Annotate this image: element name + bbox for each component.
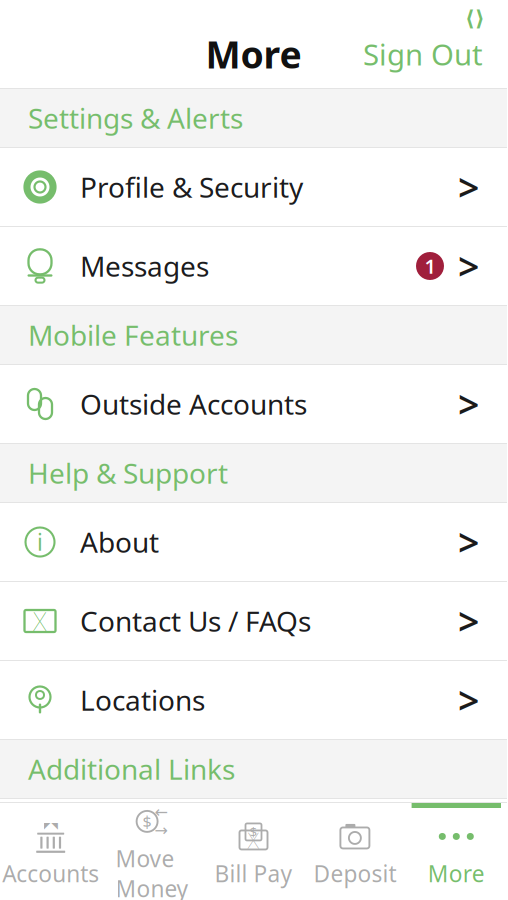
staticText: Accounts [2, 858, 99, 888]
button[interactable]: Messages [0, 227, 507, 306]
staticText: Deposit [313, 858, 396, 888]
staticText: Bill Pay [214, 858, 292, 888]
staticText: More [205, 29, 301, 79]
staticText: 1 [424, 253, 435, 279]
staticText: i [37, 527, 43, 557]
button[interactable]: i [0, 503, 507, 582]
staticText: Contact Us / FAQs [80, 602, 311, 640]
button[interactable]: Deposit [304, 803, 406, 900]
staticText: > [458, 517, 479, 567]
button[interactable]: More [406, 803, 507, 900]
button[interactable]: Sign Out [363, 34, 507, 73]
staticText: > [458, 675, 479, 725]
staticText: More [428, 858, 485, 888]
staticText: ← [155, 803, 168, 821]
staticText: > [458, 379, 479, 429]
staticText: > [458, 241, 479, 291]
button[interactable]: Locations [0, 661, 507, 740]
staticText: Profile & Security [80, 168, 303, 206]
staticText: > [458, 596, 479, 646]
staticText: Messages [80, 247, 209, 285]
staticText: Settings & Alerts [28, 99, 243, 137]
staticText: Sign Out [363, 34, 483, 73]
staticText: ◤◥ [44, 820, 58, 831]
button[interactable]: ◤◥ [0, 803, 101, 900]
staticText: → [155, 821, 168, 840]
button[interactable]: Profile & Security [0, 148, 507, 227]
staticText: Additional Links [28, 750, 235, 788]
staticText: $ [143, 811, 152, 832]
staticText: Locations [80, 681, 205, 719]
staticText: Move Money [116, 843, 189, 900]
staticText: Mobile Features [28, 316, 238, 354]
staticText: Help & Support [28, 454, 228, 492]
staticText: X [247, 825, 259, 855]
button[interactable]: $ [101, 803, 203, 900]
button[interactable]: Expand [465, 0, 507, 30]
staticText: Outside Accounts [80, 385, 307, 423]
button[interactable]: Outside Accounts [0, 365, 507, 444]
staticText: About [80, 523, 159, 561]
staticText: > [458, 162, 479, 212]
staticText: $ [249, 823, 257, 841]
button[interactable]: $ [203, 803, 304, 900]
staticText: X [33, 603, 47, 639]
staticText: ⟨⟩ [465, 6, 485, 30]
button[interactable]: X [0, 582, 507, 661]
